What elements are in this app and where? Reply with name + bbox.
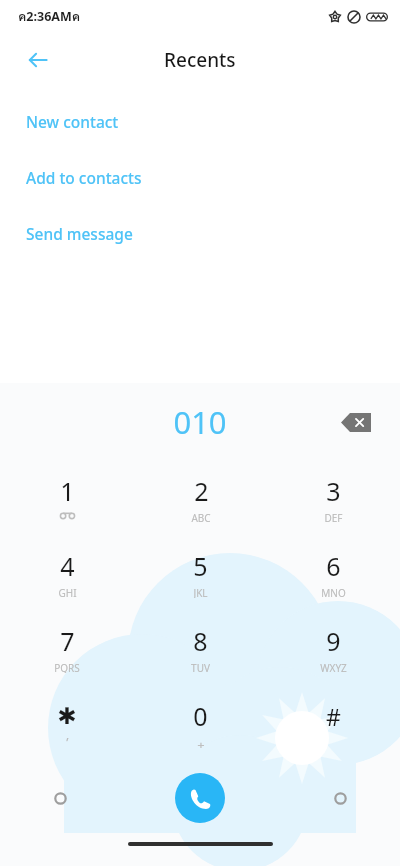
button[interactable]: Hide keypad: [318, 776, 362, 820]
staticText: PQRS: [54, 661, 80, 673]
staticText: ABC: [191, 511, 211, 523]
staticText: TUV: [191, 661, 210, 673]
staticText: Add to contacts: [26, 167, 142, 188]
staticText: #: [326, 701, 341, 732]
staticText: ค2:36AMค: [18, 7, 81, 27]
staticText: 2: [194, 474, 209, 508]
staticText: ’: [66, 733, 69, 745]
staticText: DEF: [324, 511, 343, 523]
staticText: Recents: [164, 47, 236, 73]
button[interactable]: 5: [134, 536, 267, 611]
staticText: 1: [60, 474, 75, 508]
button[interactable]: 1: [0, 461, 134, 536]
button[interactable]: Call: [175, 773, 225, 823]
button[interactable]: #: [267, 686, 400, 761]
button[interactable]: 0: [134, 686, 267, 761]
staticText: MNO: [321, 586, 346, 598]
button[interactable]: 2: [134, 461, 267, 536]
staticText: JKL: [193, 586, 208, 598]
staticText: 7: [60, 624, 75, 658]
button[interactable]: 4: [0, 536, 134, 611]
button[interactable]: 8: [134, 611, 267, 686]
staticText: 8: [193, 624, 208, 658]
staticText: 6: [326, 549, 341, 583]
button[interactable]: 6: [267, 536, 400, 611]
staticText: +: [197, 736, 205, 748]
button[interactable]: Add to contacts: [0, 164, 400, 190]
staticText: GHI: [58, 586, 77, 598]
button[interactable]: 9: [267, 611, 400, 686]
button[interactable]: 3: [267, 461, 400, 536]
button[interactable]: Keypad options: [38, 776, 82, 820]
staticText: 4: [60, 549, 75, 583]
button[interactable]: Delete: [334, 400, 378, 444]
staticText: WXYZ: [320, 661, 347, 673]
staticText: 5: [193, 549, 208, 583]
button[interactable]: Back: [14, 36, 62, 84]
staticText: 3: [326, 474, 341, 508]
staticText: 010: [173, 401, 227, 443]
staticText: Send message: [26, 223, 133, 244]
button[interactable]: Send message: [0, 220, 400, 246]
staticText: 0: [193, 699, 208, 733]
button[interactable]: 7: [0, 611, 134, 686]
button[interactable]: New contact: [0, 108, 400, 134]
staticText: New contact: [26, 111, 119, 132]
staticText: ✱: [57, 703, 77, 730]
button[interactable]: ✱: [0, 686, 134, 761]
staticText: 9: [326, 624, 341, 658]
